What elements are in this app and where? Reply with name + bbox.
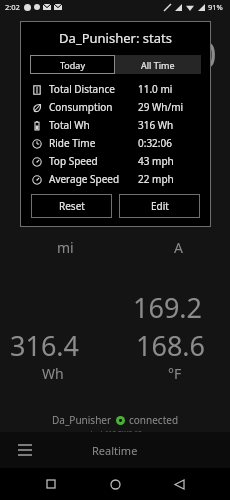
staticText: Today — [60, 59, 85, 71]
staticText: connected — [129, 413, 179, 427]
staticText: Da_Punisher: stats — [20, 29, 211, 47]
staticText: Average Speed — [49, 172, 120, 186]
staticText: Wh — [42, 364, 64, 383]
staticText: 22 mph — [138, 172, 174, 186]
staticText: 43 mph — [138, 154, 174, 168]
staticText: mi — [57, 238, 74, 257]
button[interactable]: Today — [30, 55, 115, 74]
staticText: Top Speed — [49, 154, 98, 168]
staticText: Edit — [151, 199, 169, 213]
button[interactable]: Recents — [38, 471, 64, 497]
button[interactable]: Home — [102, 471, 128, 497]
staticText: Ride Time — [49, 136, 96, 150]
staticText: All Time — [141, 59, 175, 71]
staticText: 11.0 mi — [138, 82, 173, 96]
button[interactable]: Realtime — [92, 443, 138, 458]
button[interactable]: Edit — [119, 194, 200, 218]
staticText: Total Wh — [49, 118, 90, 132]
staticText: 0 — [196, 30, 217, 79]
button[interactable]: Reset — [31, 194, 112, 218]
button[interactable]: Back — [166, 471, 192, 497]
staticText: A — [174, 238, 183, 257]
staticText: 316.4 — [10, 327, 80, 364]
staticText: 169.2 — [133, 289, 203, 326]
staticText: 29 Wh/mi — [138, 100, 184, 114]
staticText: °F — [168, 364, 182, 383]
staticText: Consumption — [49, 100, 113, 114]
staticText: 0:32:06 — [138, 136, 172, 150]
staticText: Da_Punisher — [52, 413, 112, 427]
staticText: 2:02 — [5, 2, 20, 12]
staticText: Total Distance — [49, 82, 115, 96]
button[interactable]: All Time — [115, 55, 201, 74]
staticText: dual 410 FW3.62 — [88, 429, 143, 439]
staticText: 91% — [208, 2, 223, 12]
staticText: 316 Wh — [138, 118, 174, 132]
button[interactable]: Menu — [10, 435, 40, 465]
staticText: 168.6 — [136, 327, 206, 364]
staticText: Reset — [59, 199, 85, 213]
